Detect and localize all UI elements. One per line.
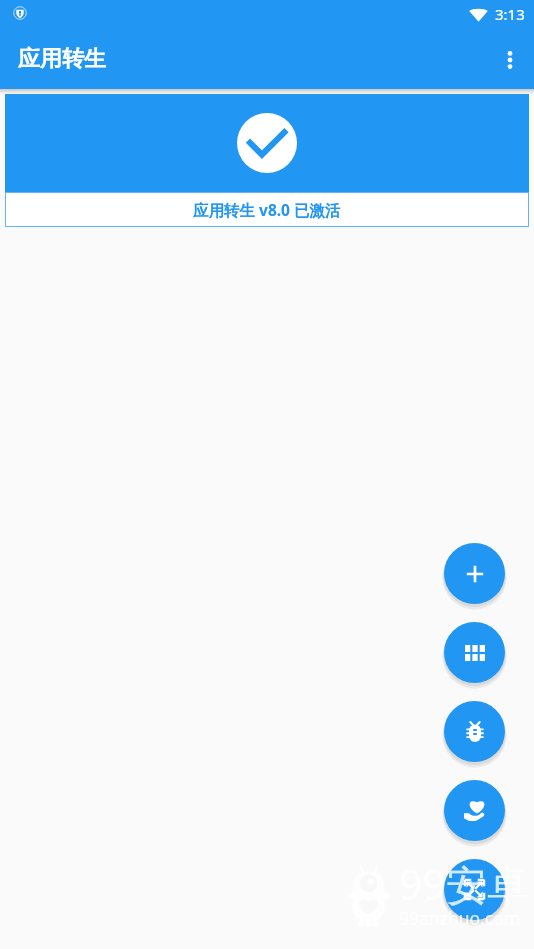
button[interactable]: Fullscreen — [444, 859, 505, 920]
staticText: 应用转生 v8.0 已激活 — [193, 199, 341, 220]
button[interactable]: More options — [486, 36, 534, 84]
button[interactable]: Add — [444, 543, 505, 604]
staticText: 99安卓 — [399, 856, 528, 912]
button[interactable]: Apps — [444, 622, 505, 683]
button[interactable]: Donate — [444, 780, 505, 841]
staticText: 99anzhuo.com — [399, 906, 521, 930]
staticText: 3:13 — [495, 4, 525, 24]
button[interactable]: 应用转生 v8.0 已激活 — [5, 192, 529, 227]
staticText: 应用转生 — [18, 45, 106, 73]
button[interactable]: Debug — [444, 701, 505, 762]
